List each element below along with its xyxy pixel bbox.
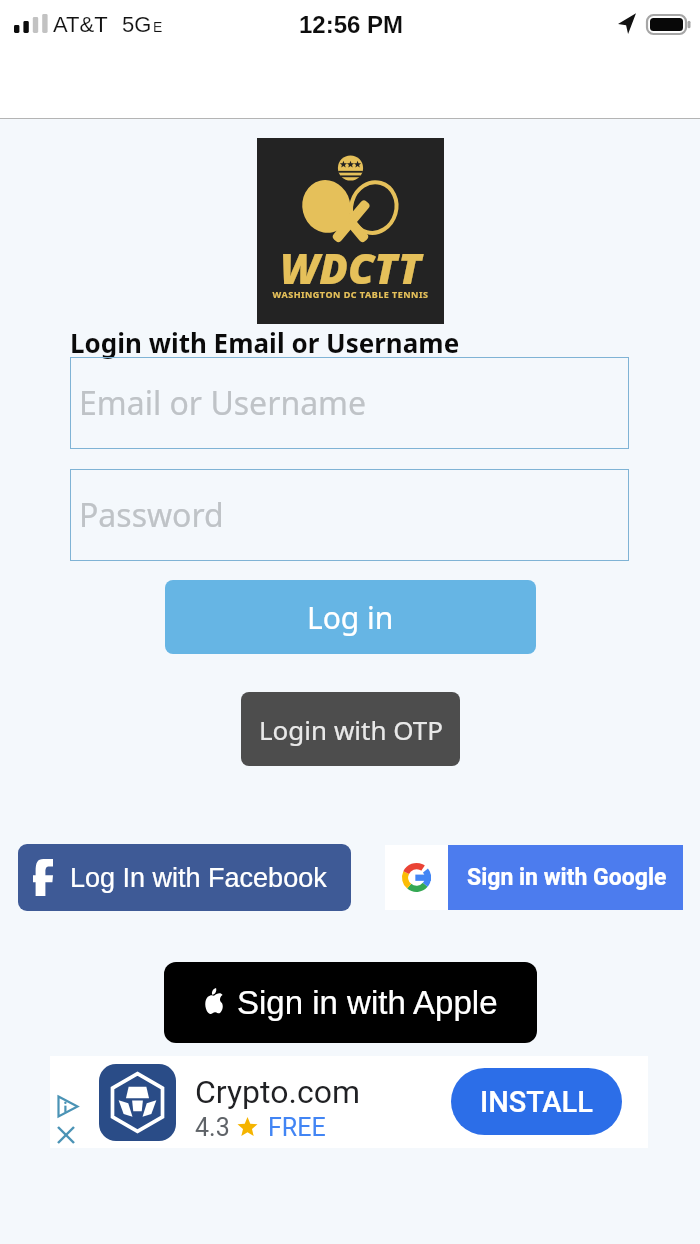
button[interactable]: Sign in with Google	[385, 845, 683, 910]
other: Location active	[618, 12, 636, 34]
staticText: Login with OTP	[259, 712, 443, 747]
button[interactable]: Log in	[165, 580, 536, 654]
button[interactable]: Log In with Facebook	[18, 844, 351, 911]
staticText: Sign in with Google	[467, 864, 667, 891]
staticText: WDCTT	[257, 239, 444, 296]
staticText: Sign in with Apple	[237, 984, 498, 1021]
other: Ad info	[57, 1096, 78, 1117]
staticText: AT&T	[53, 12, 108, 37]
other: Close ad	[57, 1126, 75, 1144]
staticText: 12:56 PM	[299, 11, 404, 38]
staticText: INSTALL	[480, 1085, 593, 1119]
staticText: Email or Username	[79, 381, 367, 425]
button[interactable]: Sign in with Apple	[164, 962, 537, 1043]
button[interactable]: INSTALL	[451, 1068, 622, 1135]
button[interactable]: Ad info	[50, 1056, 648, 1148]
staticText: 4.3	[195, 1113, 230, 1142]
staticText: FREE	[268, 1113, 326, 1142]
staticText: Log In with Facebook	[70, 863, 327, 893]
staticText: WASHINGTON DC TABLE TENNIS	[257, 288, 444, 300]
button[interactable]: Login with OTP	[241, 692, 460, 766]
other: Battery full	[646, 14, 691, 35]
staticText: Crypto.com	[195, 1073, 360, 1111]
staticText: E	[153, 19, 163, 35]
button[interactable]: Password	[70, 469, 629, 561]
staticText: Login with Email or Username	[70, 325, 460, 360]
staticText: Password	[79, 493, 224, 537]
staticText: 5G	[122, 12, 152, 37]
button[interactable]: Email or Username	[70, 357, 629, 449]
staticText: Log in	[307, 597, 394, 638]
